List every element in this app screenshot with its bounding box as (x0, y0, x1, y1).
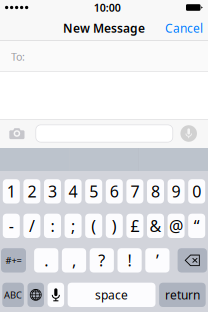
button[interactable]: 3 (44, 179, 61, 203)
staticText: - (9, 215, 14, 236)
staticText: 9 (172, 181, 181, 202)
button[interactable]: £ (126, 214, 143, 238)
staticText: 0 (192, 181, 201, 202)
button[interactable]: 0 (188, 179, 205, 203)
staticText: “ (194, 215, 200, 236)
staticText: space (95, 287, 128, 303)
staticText: ) (112, 215, 117, 236)
button[interactable]: 7 (126, 179, 143, 203)
staticText: return (165, 287, 200, 303)
button[interactable]: Cancel (160, 15, 208, 41)
button[interactable]: ) (106, 214, 123, 238)
button[interactable]: return (159, 283, 206, 307)
staticText: @ (169, 215, 183, 236)
button[interactable]: Next keyboard (27, 283, 44, 307)
staticText: To: (11, 49, 25, 64)
staticText: 7 (130, 181, 139, 202)
button[interactable]: #+= (1, 248, 26, 272)
button[interactable]: ! (117, 248, 142, 272)
button[interactable]: Camera (0, 119, 36, 148)
button[interactable]: 6 (106, 179, 123, 203)
staticText: 3 (48, 181, 57, 202)
staticText: ’ (156, 250, 159, 271)
button[interactable]: , (62, 248, 86, 272)
button[interactable]: space (68, 283, 155, 307)
staticText: £ (130, 215, 139, 236)
staticText: / (29, 215, 35, 236)
button[interactable]: ? (90, 248, 114, 272)
button[interactable]: Dictate (48, 283, 64, 307)
button[interactable]: ( (85, 214, 102, 238)
button[interactable]: / (23, 214, 40, 238)
staticText: 8 (151, 181, 160, 202)
button[interactable]: ABC (2, 283, 24, 307)
staticText: , (72, 250, 76, 271)
staticText: 5 (89, 181, 98, 202)
staticText: ? (98, 250, 105, 271)
staticText: & (149, 215, 161, 236)
staticText: #+= (5, 254, 21, 267)
staticText: 1 (7, 181, 16, 202)
staticText: . (44, 250, 48, 271)
button[interactable]: . (34, 248, 58, 272)
button[interactable]: 2 (23, 179, 40, 203)
staticText: 10:00 (94, 0, 121, 15)
staticText: : (50, 215, 54, 236)
button[interactable]: : (44, 214, 61, 238)
button[interactable]: 8 (147, 179, 164, 203)
button[interactable]: ’ (145, 248, 169, 272)
staticText: Cancel (165, 20, 203, 36)
staticText: 6 (110, 181, 119, 202)
button[interactable]: - (3, 214, 20, 238)
staticText: ( (91, 215, 96, 236)
staticText: New Message (63, 20, 145, 36)
button[interactable]: 1 (3, 179, 20, 203)
staticText: 4 (69, 181, 78, 202)
staticText: ! (128, 250, 132, 271)
button[interactable]: 4 (65, 179, 82, 203)
button[interactable]: 9 (168, 179, 185, 203)
button[interactable]: Dictate (173, 119, 208, 148)
button[interactable]: “ (188, 214, 205, 238)
button[interactable]: & (147, 214, 164, 238)
button[interactable]: ; (65, 214, 82, 238)
staticText: ABC (4, 289, 22, 301)
staticText: ; (71, 215, 75, 236)
staticText: 2 (27, 181, 36, 202)
button[interactable]: 5 (85, 179, 102, 203)
button[interactable]: @ (168, 214, 185, 238)
button[interactable]: Delete (178, 248, 207, 272)
